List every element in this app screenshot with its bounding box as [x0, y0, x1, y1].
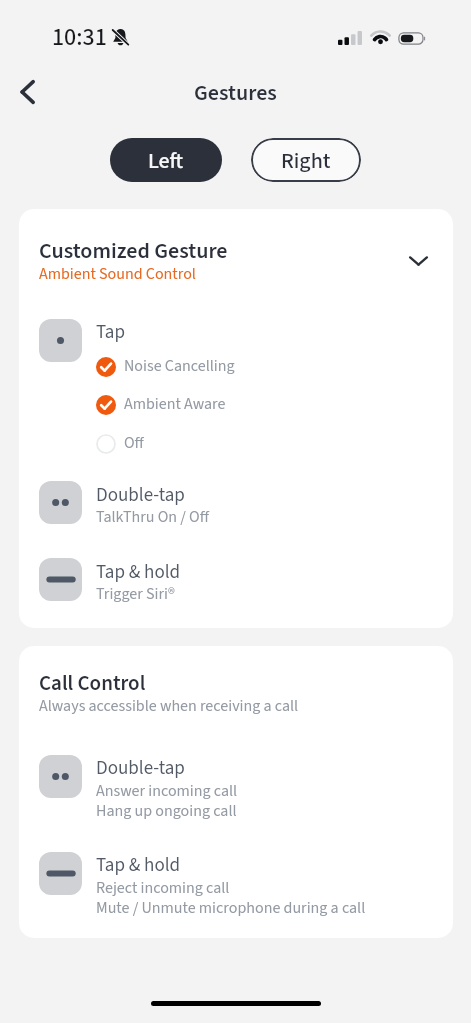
- staticText: Off: [124, 432, 144, 455]
- button[interactable]: Gesture icon: [39, 319, 82, 362]
- button[interactable]: Collapse: [397, 240, 439, 282]
- staticText: Tap: [96, 319, 125, 346]
- staticText: Left: [148, 145, 184, 176]
- button[interactable]: Off: [96, 432, 144, 455]
- staticText: Right: [281, 145, 331, 176]
- staticText: Double-tap: [96, 755, 185, 782]
- button[interactable]: Ambient Aware: [96, 393, 226, 416]
- staticText: Gestures: [194, 77, 277, 108]
- staticText: Reject incoming call: [96, 877, 230, 900]
- staticText: Answer incoming call: [96, 780, 238, 803]
- staticText: Always accessible when receiving a call: [39, 695, 299, 718]
- staticText: Ambient Sound Control: [39, 263, 196, 286]
- button[interactable]: Back: [5, 70, 49, 114]
- staticText: 10:31: [52, 20, 107, 54]
- staticText: Hang up ongoing call: [96, 800, 237, 823]
- staticText: TalkThru On / Off: [96, 506, 209, 529]
- button[interactable]: Gesture icon: [39, 481, 82, 524]
- staticText: Mute / Unmute microphone during a call: [96, 897, 366, 920]
- button[interactable]: Right: [251, 138, 361, 182]
- staticText: Trigger Siri®: [96, 583, 175, 606]
- button[interactable]: Left: [110, 138, 222, 182]
- staticText: Call Control: [39, 668, 146, 698]
- staticText: Tap & hold: [96, 559, 181, 586]
- button[interactable]: Gesture icon: [39, 558, 82, 601]
- button[interactable]: Gesture icon: [39, 755, 82, 798]
- staticText: Ambient Aware: [124, 393, 226, 416]
- button[interactable]: Noise Cancelling: [96, 355, 235, 378]
- staticText: Noise Cancelling: [124, 355, 235, 378]
- staticText: Double-tap: [96, 482, 185, 509]
- staticText: Tap & hold: [96, 852, 181, 879]
- button[interactable]: Gesture icon: [39, 852, 82, 895]
- staticText: Customized Gesture: [39, 235, 228, 266]
